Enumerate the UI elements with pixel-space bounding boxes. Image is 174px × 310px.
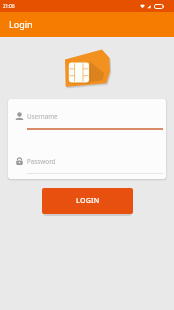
staticText: 21:06 (3, 3, 15, 9)
other: Password (15, 157, 24, 166)
other: Username (15, 112, 24, 121)
staticText: LOGIN (76, 196, 100, 206)
staticText: Username (27, 112, 58, 121)
other: SIM card (65, 49, 110, 87)
button[interactable]: LOGIN (42, 188, 133, 214)
staticText: Password (27, 157, 56, 166)
staticText: Login (9, 18, 33, 30)
